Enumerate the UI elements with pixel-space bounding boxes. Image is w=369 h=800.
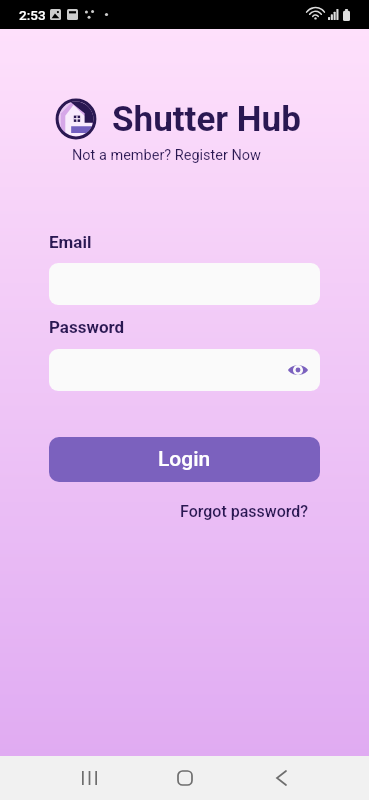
staticText: 2:53: [19, 7, 46, 23]
button[interactable]: Show password: [49, 349, 320, 391]
button[interactable]: [49, 263, 320, 305]
button[interactable]: Home: [161, 756, 209, 800]
staticText: Login: [158, 447, 211, 472]
button[interactable]: Recents: [65, 756, 113, 800]
staticText: Password: [49, 317, 125, 337]
staticText: Shutter Hub: [112, 99, 301, 140]
button[interactable]: Show password: [285, 357, 311, 383]
button[interactable]: Forgot password?: [180, 502, 309, 521]
button[interactable]: Login: [49, 437, 320, 482]
button[interactable]: Not a member? Register Now: [72, 147, 261, 164]
button[interactable]: Back: [257, 756, 305, 800]
staticText: Email: [49, 232, 92, 252]
